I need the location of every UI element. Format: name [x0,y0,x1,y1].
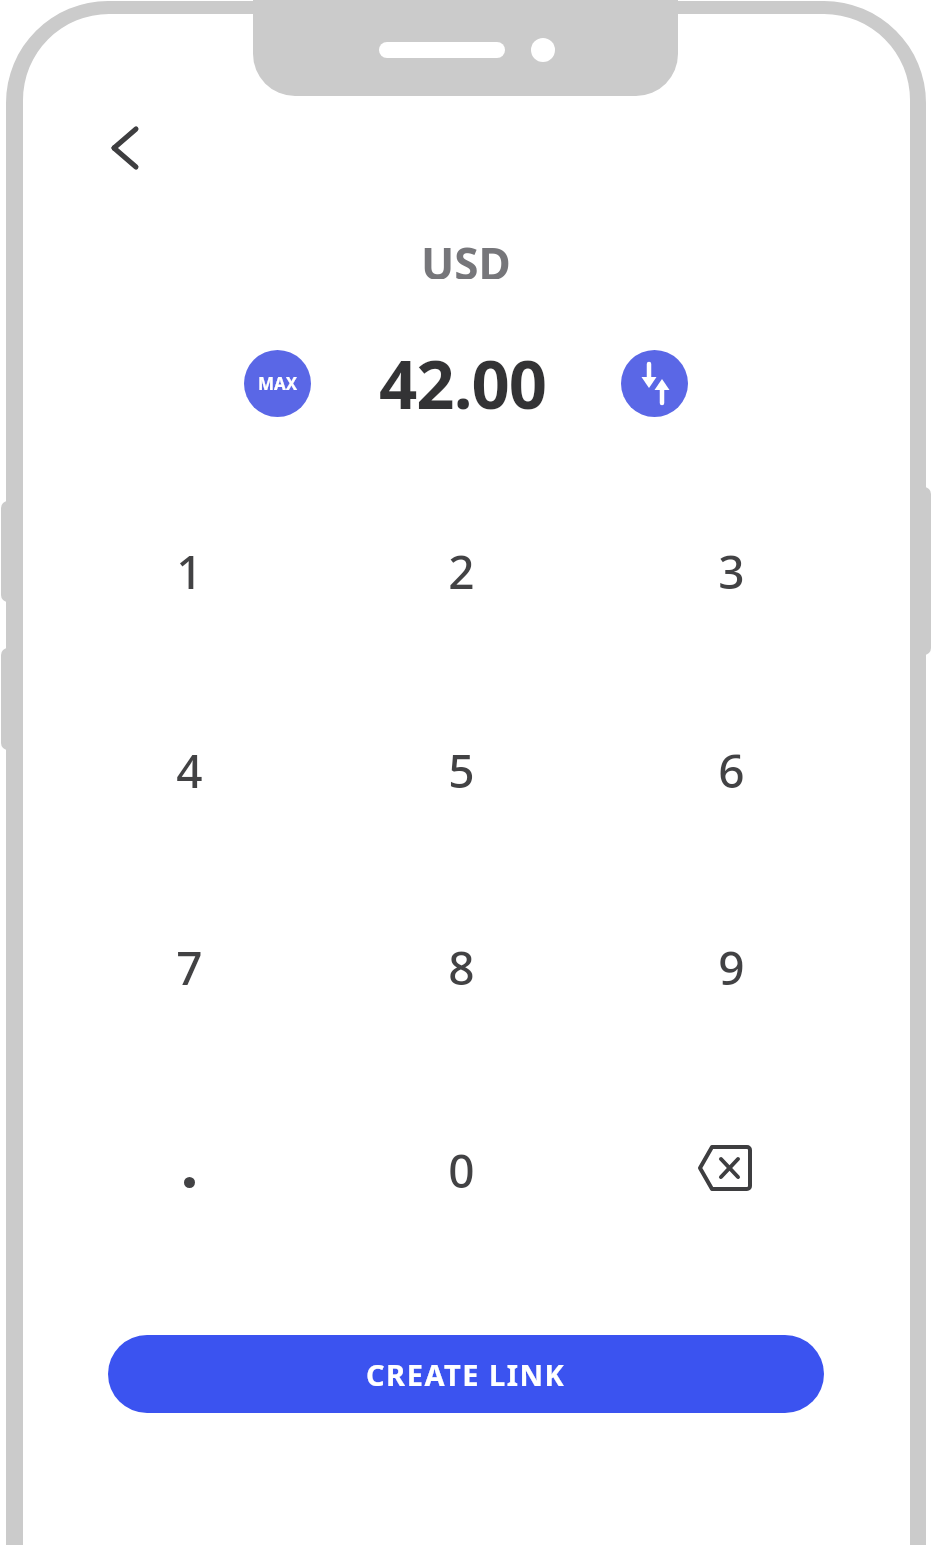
button[interactable]: 4 [129,720,249,820]
staticText: USD [421,233,511,279]
staticText: 6 [718,739,745,802]
button[interactable]: MAX [244,350,311,417]
button[interactable] [621,350,688,417]
staticText: 3 [718,540,745,603]
button[interactable] [96,118,156,178]
button[interactable] [666,1118,786,1218]
staticText: 8 [448,936,475,999]
staticText: 1 [176,540,203,603]
button[interactable]: 2 [401,521,521,621]
button[interactable]: 1 [129,521,249,621]
button[interactable]: 8 [401,917,521,1017]
staticText: 7 [176,936,203,999]
staticText: 9 [718,936,745,999]
staticText: 42.00 [379,337,547,428]
button[interactable]: 5 [401,720,521,820]
staticText: 4 [176,739,203,802]
staticText: 0 [448,1139,475,1202]
button[interactable] [129,1132,249,1232]
staticText: 5 [448,739,475,802]
staticText: MAX [258,372,298,395]
staticText: 2 [448,540,475,603]
button[interactable]: 6 [671,720,791,820]
button[interactable]: 3 [671,521,791,621]
button[interactable]: 7 [129,917,249,1017]
button[interactable]: CREATE LINK [108,1335,824,1413]
staticText: CREATE LINK [366,1355,566,1394]
button[interactable]: 0 [401,1120,521,1220]
button[interactable]: 9 [671,917,791,1017]
